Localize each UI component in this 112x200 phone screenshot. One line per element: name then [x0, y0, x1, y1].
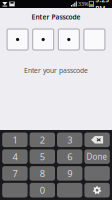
staticText: 4 [12, 150, 17, 163]
button[interactable]: 3 [57, 132, 82, 147]
staticText: 3 [67, 134, 72, 146]
button[interactable]: 7 [2, 166, 28, 181]
button[interactable]: Blank key [84, 166, 110, 181]
staticText: 1 [12, 134, 17, 146]
staticText: 2 [40, 134, 45, 146]
button[interactable]: 8 [30, 166, 55, 181]
staticText: 7 [12, 167, 17, 180]
staticText: 5 [40, 150, 45, 163]
staticText: 33% [78, 0, 88, 8]
staticText: 6 [67, 150, 72, 163]
button[interactable]: Delete [84, 132, 110, 147]
staticText: 9 [67, 167, 72, 180]
button[interactable]: 6 [57, 149, 82, 164]
staticText: 8 [40, 167, 45, 180]
staticText: Enter your passcode [24, 66, 88, 75]
staticText: 5:25 PM [95, 0, 109, 13]
button[interactable]: 2 [30, 132, 55, 147]
button[interactable]: Settings [84, 183, 110, 197]
staticText: Done [87, 151, 108, 162]
button[interactable]: 1 [2, 132, 28, 147]
button[interactable]: 5 [30, 149, 55, 164]
button[interactable]: Blank key [2, 183, 28, 197]
button[interactable]: Done [84, 149, 110, 164]
staticText: Enter Passcode [31, 13, 80, 21]
button[interactable]: 4 [2, 149, 28, 164]
staticText: 0 [40, 184, 45, 196]
button[interactable]: 9 [57, 166, 82, 181]
button[interactable]: 0 [30, 183, 55, 197]
button[interactable]: Blank key [57, 183, 82, 197]
